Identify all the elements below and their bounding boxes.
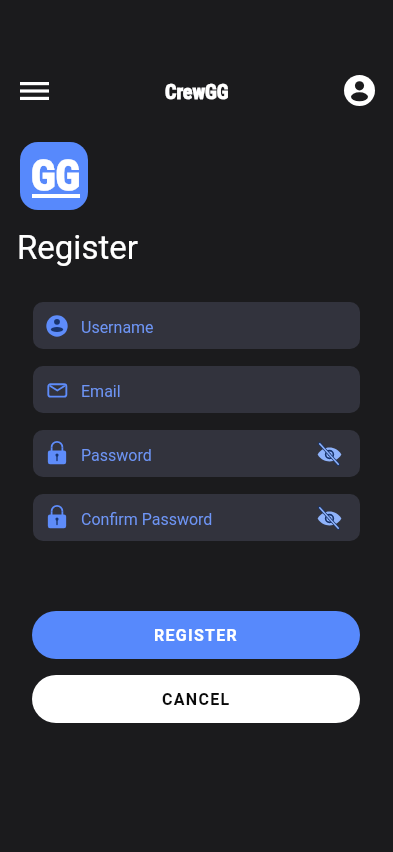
button[interactable]: CANCEL: [32, 675, 360, 723]
staticText: CrewGG: [165, 80, 229, 103]
staticText: Email: [81, 382, 121, 401]
button[interactable]: Email: [33, 366, 360, 413]
button[interactable]: Username: [33, 302, 360, 349]
button[interactable]: Menu: [6, 65, 62, 117]
button[interactable]: Confirm Password: [33, 494, 360, 541]
button[interactable]: Password: [33, 430, 360, 477]
staticText: GG: [31, 151, 81, 200]
staticText: REGISTER: [154, 626, 239, 645]
staticText: Register: [17, 228, 138, 267]
staticText: CANCEL: [162, 690, 231, 709]
staticText: Confirm Password: [81, 510, 213, 529]
button[interactable]: REGISTER: [32, 611, 360, 659]
staticText: Username: [81, 318, 154, 337]
button[interactable]: Toggle password visibility: [307, 496, 351, 540]
staticText: Password: [81, 446, 152, 465]
button[interactable]: Toggle password visibility: [307, 432, 351, 476]
button[interactable]: Account: [335, 66, 383, 114]
